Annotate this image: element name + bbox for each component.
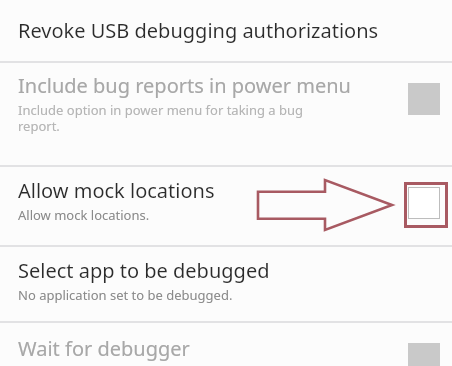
staticText: Revoke USB debugging authorizations (18, 17, 379, 44)
button[interactable]: Revoke USB debugging authorizations (0, 0, 452, 61)
button[interactable]: Allow mock locations (0, 167, 452, 245)
staticText: Allow mock locations. (18, 206, 150, 224)
other: Allow mock locations (408, 187, 440, 219)
button[interactable]: Wait for debugger (0, 323, 452, 366)
staticText: Include option in power menu for taking … (18, 101, 304, 134)
button[interactable]: Select app to be debugged (0, 247, 452, 321)
staticText: No application set to be debugged. (18, 286, 233, 304)
staticText: Allow mock locations (18, 177, 215, 204)
staticText: Include bug reports in power menu (18, 72, 351, 99)
staticText: Wait for debugger (18, 335, 190, 362)
staticText: Select app to be debugged (18, 257, 270, 284)
button[interactable]: Include bug reports in power menu (0, 63, 452, 165)
